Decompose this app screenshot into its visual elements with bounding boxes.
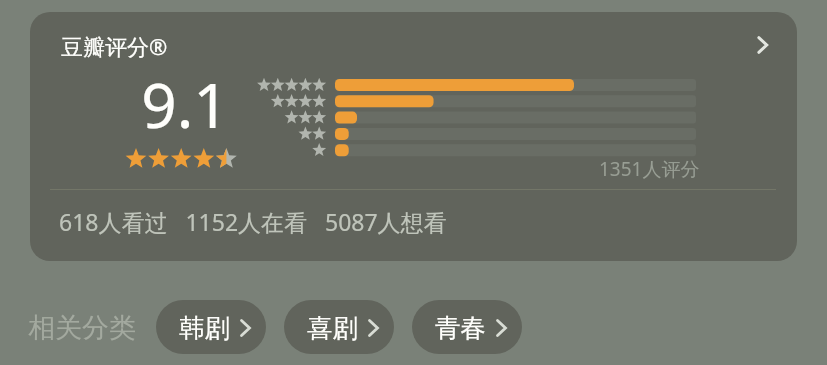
staticText: 青春 [435, 312, 486, 344]
staticText: 618人看过 1152人在看 5087人想看 [59, 206, 447, 237]
staticText: 9.1 [120, 62, 250, 146]
staticText: 喜剧 [307, 312, 358, 344]
button[interactable]: 青春 [412, 300, 522, 354]
staticText: 相关分类 [28, 311, 136, 345]
button[interactable]: 喜剧 [284, 300, 394, 354]
staticText: 韩剧 [179, 312, 230, 344]
button[interactable]: 韩剧 [156, 300, 266, 354]
staticText: 1351人评分 [599, 156, 700, 182]
button[interactable]: 豆瓣评分® [30, 12, 797, 261]
staticText: 豆瓣评分® [61, 31, 168, 61]
button[interactable]: View Douban rating details [738, 25, 782, 69]
